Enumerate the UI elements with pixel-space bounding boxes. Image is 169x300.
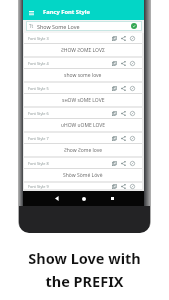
staticText: Show Some Love <box>37 23 80 30</box>
button[interactable]: Share <box>120 135 127 142</box>
button[interactable]: Share <box>120 85 127 92</box>
button[interactable]: WhatsApp <box>129 110 136 117</box>
button[interactable]: Font Style 5 <box>24 83 142 106</box>
button[interactable]: Font Style 8 <box>24 158 142 181</box>
button[interactable]: Share <box>120 183 127 189</box>
button[interactable]: Font Style 3 <box>24 33 142 56</box>
button[interactable]: Font Style 4 <box>24 58 142 81</box>
button[interactable]: Copy <box>111 110 118 117</box>
button[interactable]: Copy <box>111 135 118 142</box>
staticText: the PREFIX <box>45 271 124 291</box>
staticText: Font Style 8 <box>28 161 49 166</box>
staticText: ᴜHOW ᴜOME LOVE <box>61 122 106 129</box>
staticText: Tt <box>29 23 34 29</box>
button[interactable]: WhatsApp <box>129 135 136 142</box>
button[interactable]: Share <box>120 60 127 67</box>
staticText: Font Style 4 <box>28 61 49 66</box>
button[interactable]: Back <box>51 191 63 206</box>
staticText: Shöw Sömé Lövè <box>63 172 103 179</box>
button[interactable]: Copy <box>111 35 118 42</box>
button[interactable]: Share <box>120 110 127 117</box>
staticText: ƧHOW ƧOMΣ LOVΣ <box>61 47 105 54</box>
staticText: Font Style 9 <box>28 184 49 189</box>
button[interactable]: Menu <box>27 8 36 17</box>
button[interactable]: WhatsApp <box>129 183 136 189</box>
button[interactable]: Apply <box>131 23 137 29</box>
button[interactable]: Copy <box>111 160 118 167</box>
button[interactable]: Font Style 7 <box>24 133 142 156</box>
staticText: Show Love with <box>28 248 141 268</box>
button[interactable]: Share <box>120 160 127 167</box>
button[interactable]: Home <box>78 191 90 206</box>
button[interactable]: Font Style 9 <box>24 183 142 189</box>
button[interactable]: Copy <box>111 85 118 92</box>
button[interactable]: WhatsApp <box>129 160 136 167</box>
button[interactable]: Font Style 6 <box>24 108 142 131</box>
staticText: Fancy Font Style <box>43 8 91 16</box>
button[interactable]: WhatsApp <box>129 85 136 92</box>
staticText: Ƨhow Ƨome love <box>64 147 103 154</box>
staticText: Font Style 6 <box>28 111 49 116</box>
staticText: Font Style 3 <box>28 36 49 41</box>
button[interactable]: Copy <box>111 183 118 189</box>
button[interactable]: Recents <box>106 191 118 206</box>
staticText: show some love <box>64 72 102 79</box>
button[interactable]: Copy <box>111 60 118 67</box>
button[interactable]: Share <box>120 35 127 42</box>
staticText: Font Style 7 <box>28 136 49 141</box>
button[interactable]: Tt <box>26 21 142 31</box>
button[interactable]: WhatsApp <box>129 60 136 67</box>
staticText: sʜOW sOME LOVE <box>62 97 105 104</box>
button[interactable]: WhatsApp <box>129 35 136 42</box>
staticText: Font Style 5 <box>28 86 49 91</box>
